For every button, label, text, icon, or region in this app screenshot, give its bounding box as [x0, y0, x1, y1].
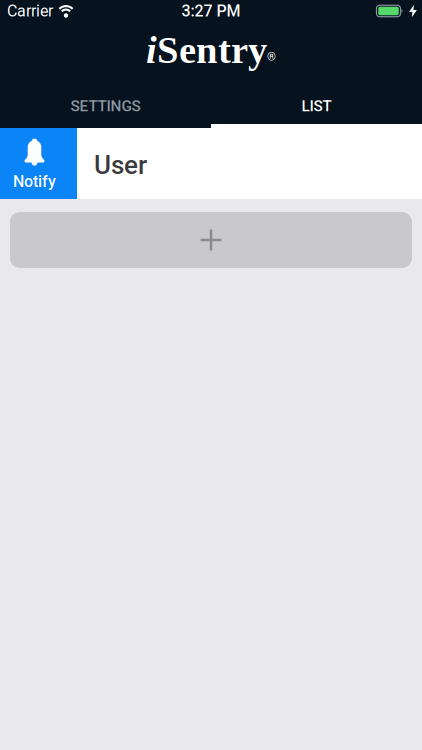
staticText: Sentry [157, 29, 267, 71]
button[interactable]: Notify [0, 128, 77, 199]
button[interactable]: Add [10, 212, 412, 268]
staticText: ® [267, 50, 276, 63]
staticText: Carrier [7, 2, 53, 20]
staticText: i [146, 29, 157, 71]
staticText: User [94, 150, 147, 180]
staticText: SETTINGS [70, 97, 140, 115]
staticText: Notify [13, 172, 56, 191]
button[interactable]: User [77, 128, 422, 199]
button[interactable]: LIST [211, 88, 422, 124]
staticText: 3:27 PM [181, 2, 240, 20]
staticText: LIST [301, 97, 331, 115]
button[interactable]: SETTINGS [0, 88, 211, 124]
